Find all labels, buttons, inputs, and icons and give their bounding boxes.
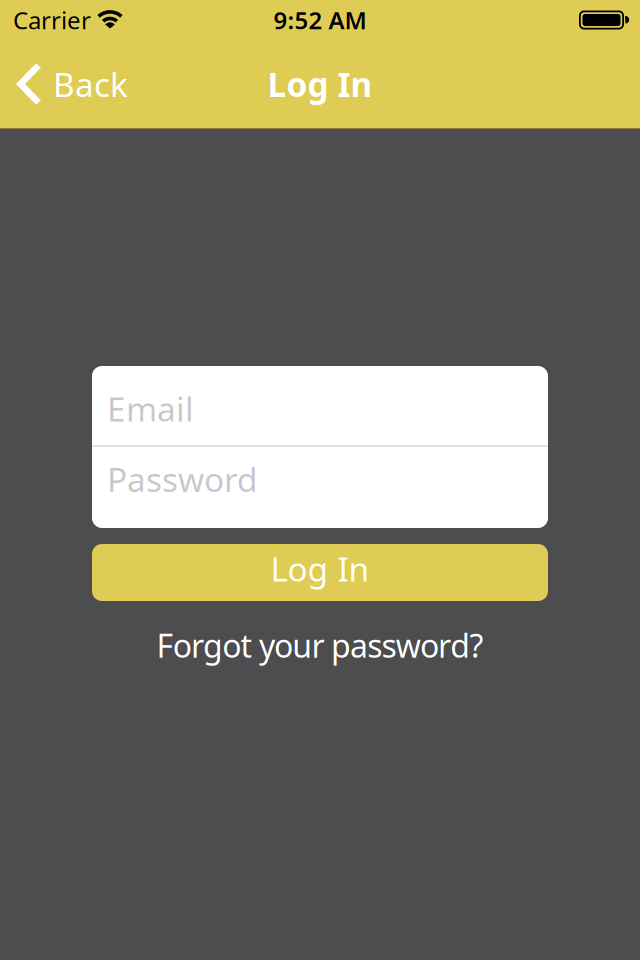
staticText: Back: [53, 62, 128, 106]
staticText: Password: [107, 457, 258, 501]
button[interactable]: Back: [0, 62, 128, 106]
button[interactable]: Password: [92, 447, 548, 528]
button[interactable]: Log In: [92, 544, 548, 601]
staticText: 9:52 AM: [273, 4, 366, 36]
staticText: Forgot your password?: [156, 624, 483, 666]
button[interactable]: Forgot your password?: [156, 624, 483, 666]
staticText: Carrier: [13, 4, 91, 36]
staticText: Log In: [267, 62, 372, 106]
button[interactable]: Email: [92, 366, 548, 445]
staticText: Email: [107, 386, 194, 431]
staticText: Log In: [270, 546, 369, 591]
